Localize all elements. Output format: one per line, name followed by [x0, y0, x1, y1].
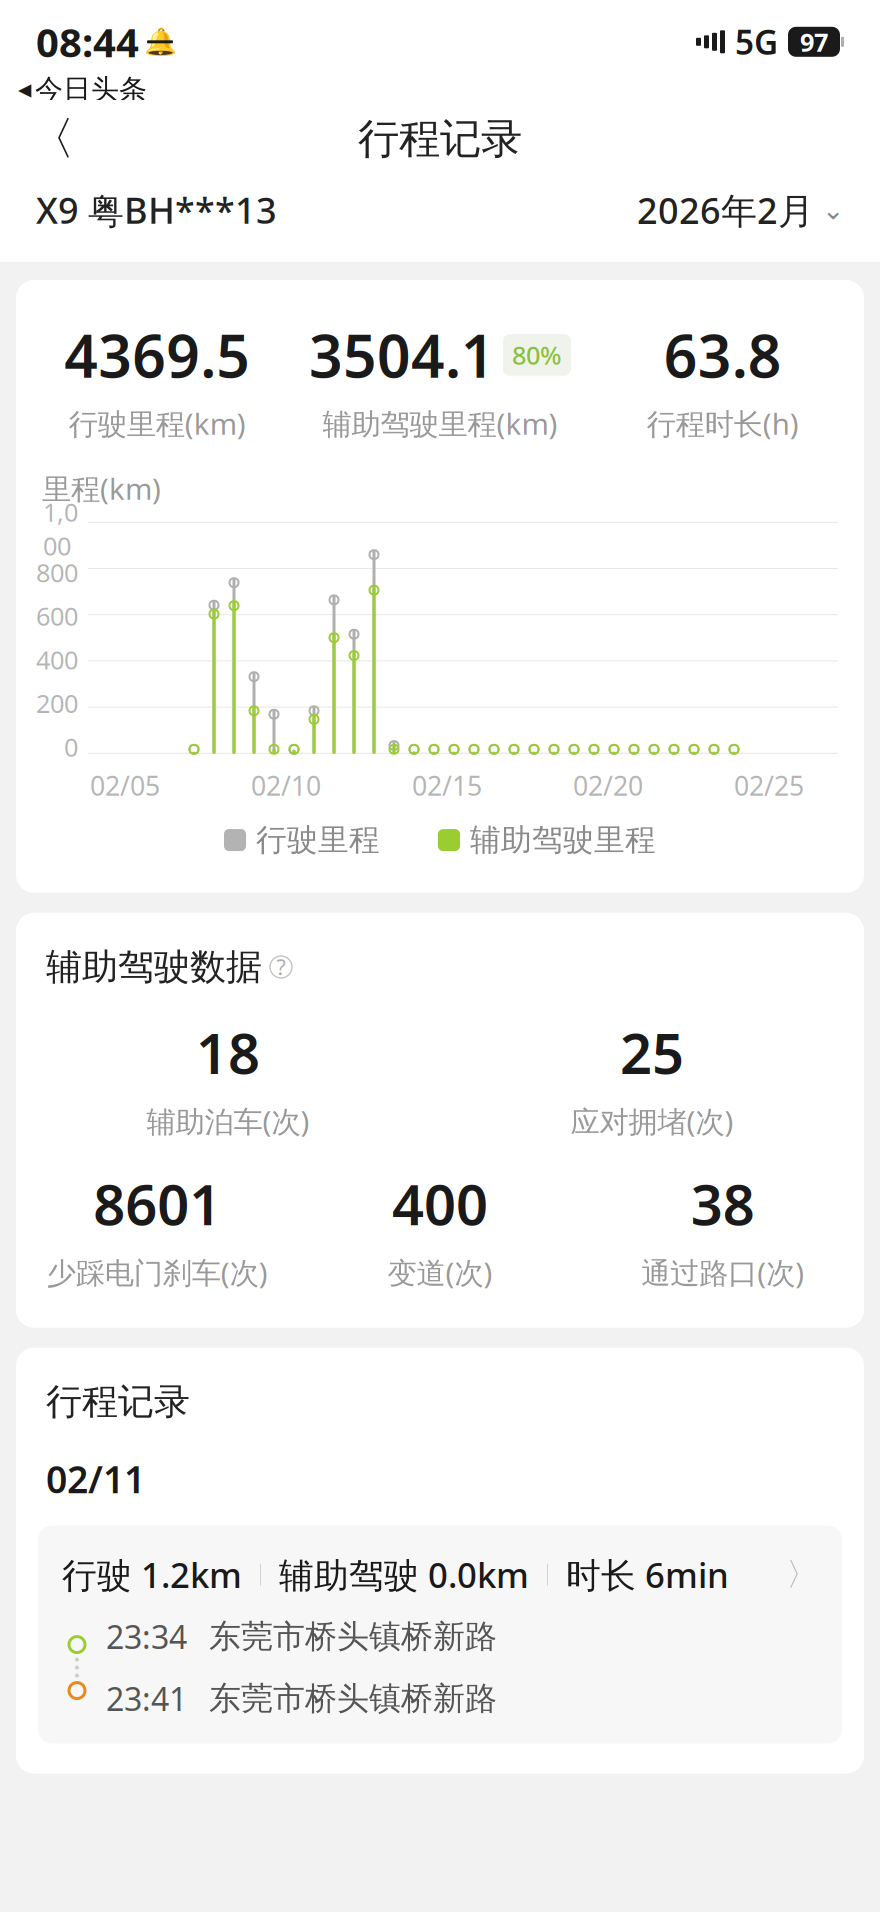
staticText: 38: [691, 1166, 755, 1241]
button[interactable]: 2026年2月: [637, 186, 844, 234]
staticText: ⌄: [822, 195, 844, 225]
staticText: 02/20: [573, 768, 643, 803]
staticText: X9 粤BH***13: [36, 186, 277, 234]
staticText: 1,000: [43, 495, 78, 562]
staticText: 8601: [93, 1166, 221, 1241]
staticText: 2026年2月: [637, 186, 814, 234]
staticText: 600: [36, 599, 78, 633]
staticText: 东莞市桥头镇桥新路: [209, 1679, 497, 1718]
staticText: 23:41: [106, 1677, 187, 1720]
staticText: 〉: [786, 1555, 818, 1594]
staticText: 行程记录: [46, 1380, 190, 1424]
staticText: 97: [800, 25, 828, 59]
staticText: 02/05: [90, 768, 160, 803]
staticText: 行驶里程: [256, 821, 380, 859]
staticText: 25: [620, 1015, 684, 1089]
staticText: 里程(km): [42, 469, 161, 508]
staticText: 80%: [512, 338, 562, 372]
staticText: 400: [36, 643, 78, 676]
staticText: ?: [276, 953, 285, 981]
staticText: 辅助驾驶数据: [46, 945, 262, 989]
staticText: 通过路口(次): [641, 1253, 804, 1292]
staticText: ◀: [18, 80, 31, 99]
staticText: 行程记录: [358, 114, 522, 164]
button[interactable]: 说明: [270, 956, 292, 978]
button[interactable]: 返回: [20, 107, 84, 171]
staticText: 行驶里程(km): [69, 404, 246, 443]
staticText: 少踩电门刹车(次): [47, 1253, 268, 1292]
staticText: 东莞市桥头镇桥新路: [209, 1617, 497, 1656]
staticText: 02/15: [412, 768, 482, 803]
staticText: 辅助驾驶 0.0km: [279, 1551, 529, 1597]
staticText: 时长 6min: [566, 1551, 729, 1597]
staticText: 行驶 1.2km: [62, 1551, 242, 1597]
staticText: 400: [392, 1166, 488, 1241]
staticText: 4369.5: [64, 316, 250, 394]
staticText: 0: [64, 730, 78, 764]
staticText: 变道(次): [387, 1253, 492, 1292]
staticText: 〈: [29, 111, 74, 167]
staticText: 63.8: [664, 316, 782, 394]
button[interactable]: 行驶 1.2km: [38, 1525, 842, 1743]
staticText: 辅助驾驶里程: [470, 821, 656, 859]
staticText: 23:34: [106, 1615, 187, 1658]
staticText: 5G: [735, 20, 778, 64]
staticText: 行程时长(h): [647, 404, 799, 443]
staticText: 3504.1: [309, 316, 495, 394]
staticText: 08:44: [36, 15, 139, 68]
staticText: 02/11: [46, 1454, 145, 1504]
staticText: 辅助驾驶里程(km): [322, 404, 557, 443]
staticText: 应对拥堵(次): [570, 1101, 733, 1140]
staticText: 02/10: [251, 768, 321, 803]
staticText: 🔔: [143, 27, 176, 57]
staticText: 200: [36, 686, 78, 720]
staticText: 今日头条: [35, 72, 147, 107]
staticText: 18: [196, 1015, 260, 1089]
staticText: 辅助泊车(次): [146, 1101, 309, 1140]
staticText: 800: [36, 556, 78, 589]
staticText: 02/25: [734, 768, 804, 803]
